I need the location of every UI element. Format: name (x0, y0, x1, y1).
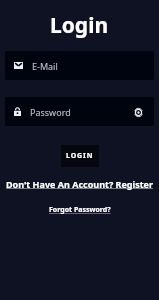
button[interactable]: LOGIN (61, 145, 99, 167)
button[interactable]: Don't Have An Account? Register (2, 177, 158, 191)
staticText: Login (50, 11, 109, 40)
button[interactable]: Password (5, 97, 154, 126)
staticText: E-Mail (32, 60, 58, 72)
staticText: Forgot Password? (49, 205, 111, 215)
staticText: LOGIN (66, 151, 94, 161)
staticText: Don't Have An Account? Register (6, 178, 154, 190)
button[interactable]: Show password (131, 105, 145, 119)
button[interactable]: E-Mail (5, 51, 154, 80)
staticText: Password (30, 106, 71, 118)
button[interactable]: Forgot Password? (45, 204, 115, 216)
